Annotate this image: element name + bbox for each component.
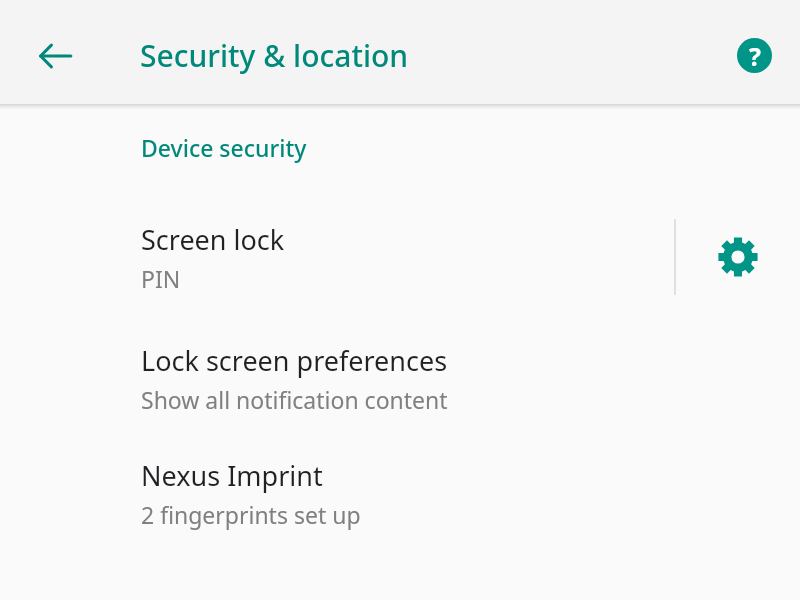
button[interactable]: Screen lock settings bbox=[676, 209, 800, 305]
button[interactable]: Nexus Imprint bbox=[0, 457, 800, 530]
staticText: Show all notification content bbox=[141, 384, 448, 415]
staticText: Screen lock bbox=[141, 221, 285, 258]
button[interactable]: Screen lock bbox=[0, 209, 674, 305]
button[interactable]: Lock screen preferences bbox=[0, 342, 800, 415]
staticText: PIN bbox=[141, 263, 181, 294]
staticText: Security & location bbox=[140, 35, 409, 76]
staticText: 2 fingerprints set up bbox=[141, 499, 361, 530]
staticText: Lock screen preferences bbox=[141, 342, 448, 379]
button[interactable]: Help bbox=[718, 19, 790, 91]
staticText: Device security bbox=[141, 132, 307, 163]
staticText: ? bbox=[749, 39, 761, 73]
staticText: Nexus Imprint bbox=[141, 457, 323, 494]
button[interactable]: Navigate up bbox=[19, 20, 91, 92]
